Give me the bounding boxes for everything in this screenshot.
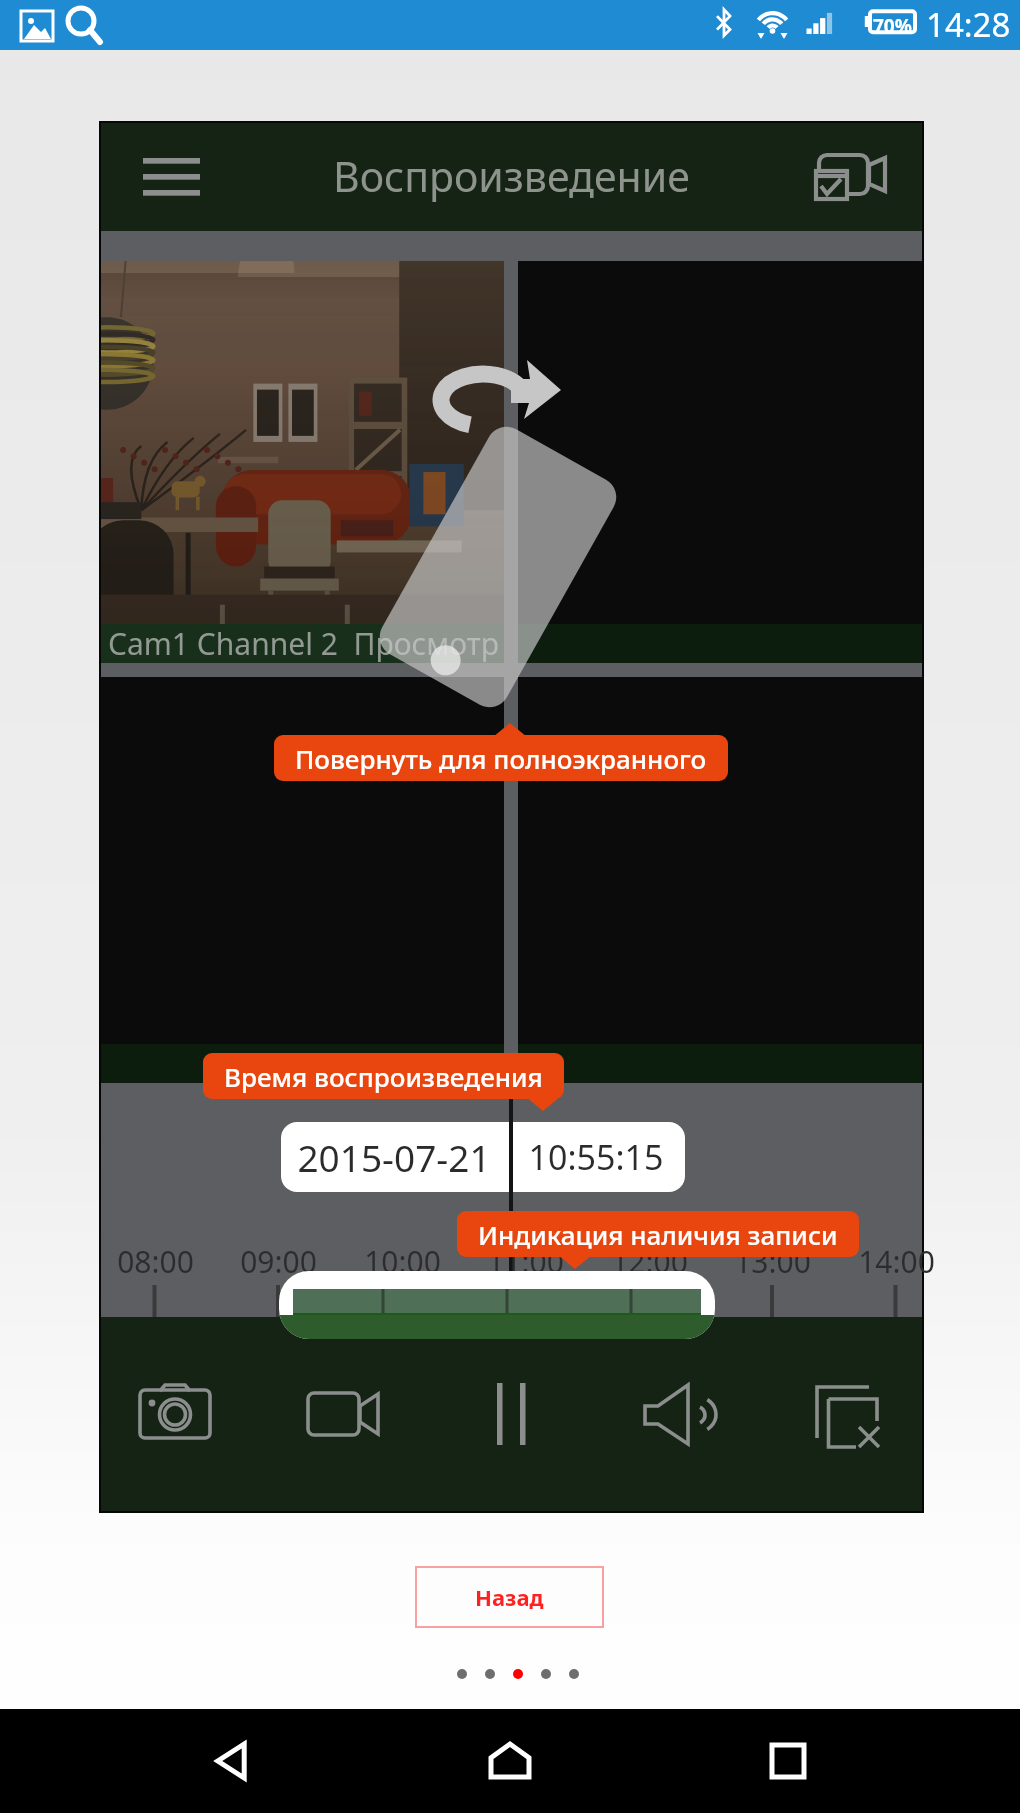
button[interactable]: Pause: [455, 1357, 567, 1471]
staticText: Воспроизведение: [333, 148, 690, 204]
button[interactable]: Record: [287, 1357, 399, 1471]
button[interactable]: Sound: [624, 1357, 736, 1471]
staticText: 70%: [873, 13, 912, 39]
button[interactable]: Home: [465, 1716, 555, 1806]
button[interactable]: Recents: [743, 1716, 833, 1806]
button[interactable]: Назад: [415, 1566, 604, 1628]
staticText: 2015-07-21: [281, 1132, 507, 1182]
staticText: 11:00: [487, 1241, 564, 1282]
button[interactable]: Повернуть для полноэкранного: [274, 735, 728, 781]
staticText: Cam1 Channel 2 Просмотр: [108, 623, 500, 662]
button[interactable]: Close: [791, 1357, 903, 1471]
staticText: Индикация наличия записи: [478, 1217, 838, 1252]
button[interactable]: Время воспроизведения: [203, 1053, 564, 1099]
button[interactable]: Snapshot: [119, 1357, 231, 1471]
staticText: 10:00: [364, 1241, 441, 1282]
staticText: Назад: [475, 1582, 544, 1612]
staticText: 14:00: [858, 1241, 935, 1282]
staticText: 08:00: [117, 1241, 194, 1282]
button[interactable]: Индикация наличия записи: [457, 1211, 859, 1257]
staticText: 10:55:15: [507, 1134, 685, 1180]
button[interactable]: 2015-07-21: [281, 1122, 685, 1192]
staticText: 12:00: [611, 1241, 688, 1282]
staticText: Время воспроизведения: [224, 1059, 543, 1094]
staticText: Повернуть для полноэкранного: [295, 741, 707, 776]
button[interactable]: Select channels: [801, 131, 899, 223]
staticText: 13:00: [734, 1241, 811, 1282]
button[interactable]: Menu: [123, 135, 219, 219]
staticText: 09:00: [240, 1241, 317, 1282]
button[interactable]: Back: [188, 1716, 278, 1806]
staticText: 14:28: [926, 2, 1011, 47]
button[interactable]: [279, 1271, 715, 1339]
